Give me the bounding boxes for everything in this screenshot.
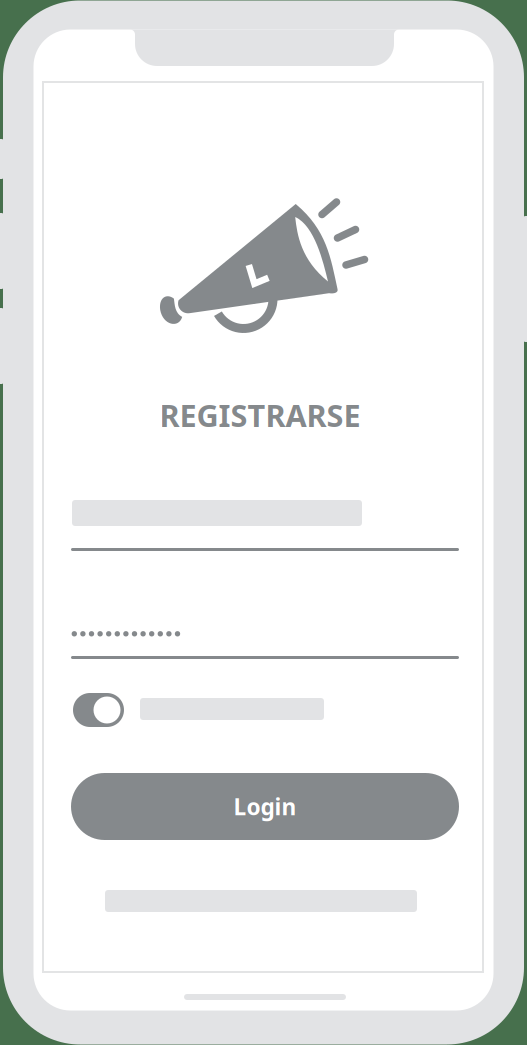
button[interactable]: Login	[71, 773, 459, 840]
staticText: Login	[233, 791, 296, 821]
staticText: REGISTRARSE	[159, 395, 360, 435]
button[interactable]: Remember me	[73, 693, 124, 727]
